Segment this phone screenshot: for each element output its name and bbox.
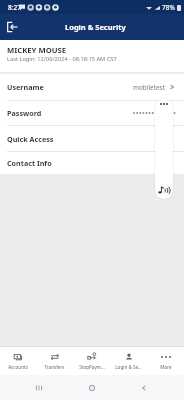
staticText: 8:27	[8, 3, 21, 12]
button[interactable]: Recents	[33, 382, 45, 394]
button[interactable]: Log out	[2, 17, 22, 37]
button[interactable]: Username	[0, 74, 184, 100]
button[interactable]: Assistant	[155, 98, 173, 199]
button[interactable]: Login & Se...	[110, 347, 147, 375]
button[interactable]: Contact Info	[0, 152, 184, 174]
button[interactable]: Home	[86, 382, 98, 394]
button[interactable]: Transfers	[36, 347, 73, 375]
staticText: Accounts	[8, 364, 28, 370]
staticText: mobiletest	[133, 83, 165, 92]
staticText: StopPaym...	[79, 364, 105, 370]
button[interactable]: Quick Access	[0, 126, 184, 151]
button[interactable]: Accounts	[0, 347, 36, 375]
button[interactable]: Back	[138, 382, 150, 394]
staticText: Quick Access	[7, 134, 54, 144]
staticText: Contact Info	[7, 158, 52, 168]
staticText: Last Login: 12/06/2024 - 08:18:15 AM CST	[7, 55, 117, 63]
staticText: 78%	[162, 3, 175, 12]
staticText: MICKEY MOUSE	[7, 45, 67, 55]
staticText: Username	[7, 82, 44, 92]
staticText: Login & Se...	[115, 364, 142, 370]
button[interactable]: Password	[0, 101, 184, 125]
staticText: Login & Security	[65, 22, 126, 32]
staticText: Password	[7, 108, 42, 118]
button[interactable]: More	[147, 347, 184, 375]
staticText: More	[160, 364, 172, 370]
button[interactable]: StopPaym...	[73, 347, 110, 375]
staticText: Transfers	[44, 364, 65, 370]
